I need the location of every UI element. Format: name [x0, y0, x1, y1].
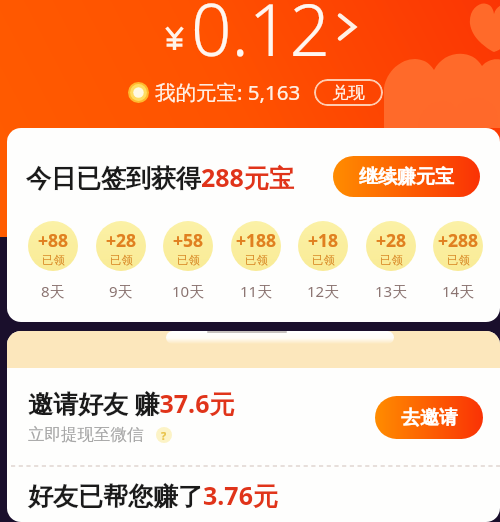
staticText: 9天 — [109, 281, 133, 301]
staticText: +188 — [236, 228, 277, 252]
staticText: 邀请好友 赚37.6元 — [28, 386, 235, 420]
staticText: 立即提现至微信 — [28, 424, 144, 445]
button[interactable]: 兑现 — [314, 79, 383, 106]
staticText: 已领 — [245, 253, 268, 267]
staticText: 13天 — [375, 281, 408, 301]
staticText: 11天 — [240, 281, 273, 301]
staticText: +18 — [308, 228, 339, 252]
staticText: +28 — [376, 228, 407, 252]
staticText: ? — [161, 428, 167, 443]
staticText: +88 — [38, 228, 69, 252]
staticText: 已领 — [110, 253, 133, 267]
staticText: 8天 — [41, 281, 65, 301]
button[interactable]: +28 — [366, 221, 416, 271]
button[interactable]: +88 — [28, 221, 78, 271]
staticText: 12天 — [307, 281, 340, 301]
staticText: 好友已帮您赚了3.76元 — [28, 478, 278, 512]
button[interactable]: +58 — [163, 221, 213, 271]
staticText: 继续赚元宝 — [359, 165, 454, 189]
button[interactable]: +18 — [298, 221, 348, 271]
staticText: +58 — [173, 228, 204, 252]
staticText: 今日已签到获得288元宝 — [26, 160, 294, 194]
staticText: 已领 — [42, 253, 65, 267]
staticText: 0.12 — [191, 0, 330, 77]
staticText: 我的元宝: 5,163 — [155, 78, 301, 106]
staticText: 14天 — [442, 281, 475, 301]
staticText: 已领 — [312, 253, 335, 267]
button[interactable]: +288 — [433, 221, 483, 271]
staticText: 去邀请 — [401, 406, 458, 430]
staticText: 10天 — [172, 281, 205, 301]
button[interactable]: 继续赚元宝 — [333, 156, 480, 197]
button[interactable]: 0.12 — [160, 0, 360, 77]
staticText: +28 — [106, 228, 137, 252]
staticText: 已领 — [177, 253, 200, 267]
staticText: 兑现 — [332, 82, 365, 103]
button[interactable]: 去邀请 — [375, 396, 483, 439]
staticText: 已领 — [447, 253, 470, 267]
button[interactable]: +188 — [231, 221, 281, 271]
staticText: 已领 — [380, 253, 403, 267]
button[interactable]: +28 — [96, 221, 146, 271]
staticText: +288 — [438, 228, 479, 252]
